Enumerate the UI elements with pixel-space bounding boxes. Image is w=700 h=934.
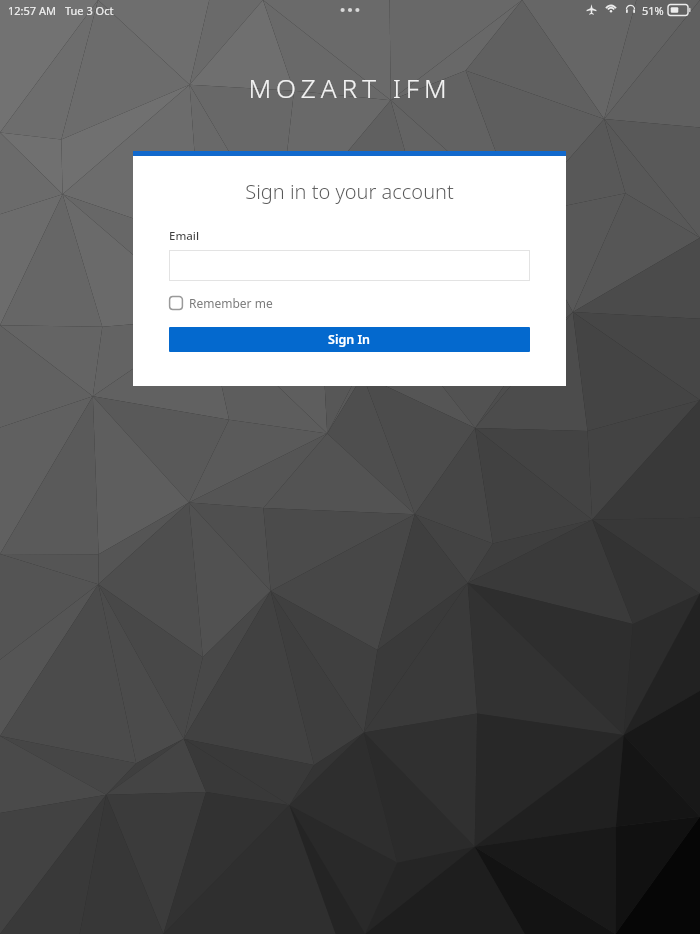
button[interactable]: Remember me (169, 295, 273, 311)
staticText: Sign in to your account (245, 178, 454, 205)
button[interactable]: Sign In (169, 327, 530, 352)
staticText: Tue 3 Oct (65, 3, 114, 18)
staticText: Sign In (328, 331, 371, 348)
staticText: Remember me (189, 295, 273, 311)
staticText: 12:57 AM (8, 3, 56, 18)
staticText: 51% (642, 3, 664, 18)
button[interactable] (169, 250, 530, 281)
staticText: MOZART IFM (248, 70, 452, 105)
staticText: Email (169, 228, 200, 244)
